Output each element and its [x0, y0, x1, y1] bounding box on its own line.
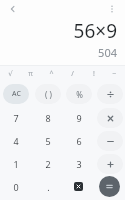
button[interactable]: /: [62, 66, 83, 82]
staticText: %: [76, 89, 83, 100]
staticText: /: [71, 69, 74, 79]
button[interactable]: 9: [66, 108, 92, 128]
staticText: 9: [76, 112, 82, 124]
button[interactable]: Equals: [99, 176, 120, 197]
staticText: 56×9: [73, 18, 117, 44]
button[interactable]: 5: [35, 131, 61, 151]
staticText: 504: [98, 45, 117, 60]
button[interactable]: ( ): [35, 84, 61, 104]
staticText: 3: [76, 158, 82, 170]
staticText: 0: [13, 181, 19, 193]
button[interactable]: More options: [102, 0, 122, 18]
button[interactable]: ^: [41, 66, 62, 82]
button[interactable]: √: [0, 66, 20, 82]
staticText: 6: [76, 135, 82, 147]
staticText: 4: [13, 135, 19, 147]
button[interactable]: [97, 84, 123, 104]
staticText: ^: [49, 69, 54, 79]
staticText: π: [28, 69, 33, 79]
staticText: 2: [45, 158, 51, 170]
button[interactable]: Backspace: [74, 182, 83, 191]
staticText: −: [112, 69, 117, 79]
staticText: AC: [12, 89, 21, 99]
button[interactable]: %: [66, 84, 92, 104]
button[interactable]: .: [35, 177, 61, 197]
button[interactable]: π: [20, 66, 41, 82]
button[interactable]: AC: [3, 84, 29, 104]
button[interactable]: 8: [35, 108, 61, 128]
button[interactable]: [97, 131, 123, 151]
button[interactable]: −: [104, 66, 125, 82]
button[interactable]: 3: [66, 154, 92, 174]
button[interactable]: 1: [3, 154, 29, 174]
staticText: 7: [13, 112, 19, 124]
button[interactable]: Back: [3, 0, 23, 18]
staticText: !: [93, 69, 95, 79]
staticText: 5: [45, 135, 51, 147]
staticText: ( ): [45, 89, 52, 100]
staticText: .: [47, 181, 50, 193]
button[interactable]: !: [83, 66, 104, 82]
button[interactable]: [97, 154, 123, 174]
button[interactable]: 2: [35, 154, 61, 174]
button[interactable]: 0: [3, 177, 29, 197]
button[interactable]: 4: [3, 131, 29, 151]
staticText: √: [8, 70, 13, 78]
staticText: 8: [45, 112, 51, 124]
button[interactable]: 7: [3, 108, 29, 128]
button[interactable]: [97, 108, 123, 128]
button[interactable]: 6: [66, 131, 92, 151]
staticText: 1: [13, 158, 19, 170]
